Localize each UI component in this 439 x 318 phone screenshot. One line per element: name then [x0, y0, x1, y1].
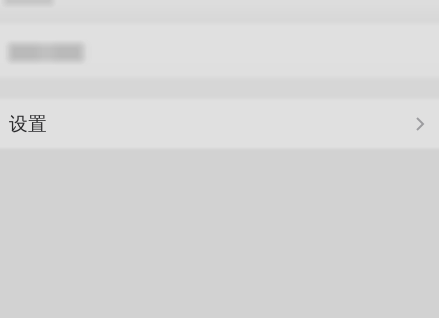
button[interactable]: 设置: [0, 102, 439, 146]
staticText: 设置: [9, 112, 47, 135]
